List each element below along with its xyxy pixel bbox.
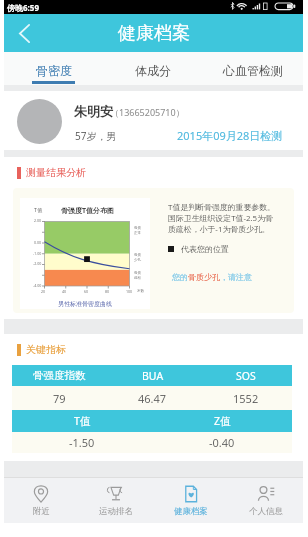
staticText: -0.40: [209, 435, 235, 450]
staticText: -2.00: [33, 261, 42, 266]
staticText: 80: [105, 289, 110, 294]
staticText: BUA: [142, 369, 164, 383]
staticText: 您的骨质少孔，请注意: [172, 272, 252, 282]
button[interactable]: 附近: [4, 478, 78, 523]
staticText: 傍晚6:59: [7, 2, 39, 13]
staticText: 测量结果分析: [26, 166, 86, 179]
staticText: 关键指标: [26, 343, 66, 356]
staticText: 代表您的位置: [181, 244, 229, 254]
staticText: 骨质 疏松: [134, 271, 142, 280]
staticText: 57岁，男: [75, 129, 117, 143]
staticText: 骨质 少孔: [134, 253, 142, 262]
staticText: 心血管检测: [223, 63, 283, 78]
staticText: 个人信息: [249, 506, 283, 517]
staticText: 朱明安: [74, 103, 113, 119]
staticText: 1552: [233, 391, 259, 406]
staticText: T值: [34, 206, 43, 213]
staticText: Z值: [214, 414, 231, 428]
staticText: 体成分: [135, 63, 171, 78]
staticText: 骨强度指数: [33, 369, 86, 382]
staticText: T值: [74, 414, 91, 428]
button[interactable]: 心血管检测: [203, 52, 303, 85]
staticText: 79: [53, 391, 66, 406]
staticText: 46.47: [138, 391, 167, 406]
button[interactable]: 健康档案: [153, 478, 228, 523]
button[interactable]: 骨密度: [4, 52, 103, 85]
staticText: -4.00: [33, 283, 42, 288]
staticText: 运动排名: [99, 506, 133, 517]
staticText: -1.50: [69, 435, 95, 450]
staticText: SOS: [236, 369, 256, 383]
staticText: -1.00: [33, 251, 42, 256]
button[interactable]: 运动排名: [78, 478, 153, 523]
staticText: （13665205710）: [110, 106, 185, 118]
staticText: 20: [41, 289, 46, 294]
staticText: 附近: [33, 506, 50, 517]
staticText: T值是判断骨强度的重要参数。 国际卫生组织设定T值-2.5为骨 质疏松，小于-1…: [168, 202, 275, 235]
staticText: 60: [84, 289, 89, 294]
button[interactable]: Back: [4, 14, 42, 52]
staticText: 男性标准骨密度曲线: [58, 300, 112, 308]
staticText: 2.00: [34, 218, 42, 223]
staticText: 0.00: [34, 240, 42, 245]
staticText: 健康档案: [118, 22, 190, 45]
staticText: 骨质 正常: [134, 226, 142, 235]
button[interactable]: 个人信息: [228, 478, 303, 523]
staticText: 2015年09月28日检测: [177, 128, 283, 143]
staticText: 40: [62, 289, 67, 294]
staticText: 骨强度T值分布图: [61, 206, 115, 216]
staticText: 健康档案: [174, 506, 208, 517]
staticText: 骨密度: [36, 63, 72, 78]
staticText: 岁数: [137, 289, 145, 294]
button[interactable]: 体成分: [103, 52, 203, 85]
staticText: 100: [126, 289, 133, 294]
